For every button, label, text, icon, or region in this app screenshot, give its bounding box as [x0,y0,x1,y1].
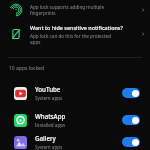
button[interactable]: Toggle app lock for YouTube [122,88,140,98]
button[interactable]: Gallery [0,133,150,150]
staticText: Gallery [35,134,56,142]
staticText: apps [30,39,41,45]
button[interactable]: YouTube [0,79,150,106]
staticText: System apps [35,95,63,101]
staticText: WhatsApp [35,112,66,120]
staticText: YouTube [35,85,61,93]
staticText: App lock can do this for the protected [30,33,111,39]
staticText: Installed apps [35,122,66,128]
staticText: Want to hide sensitive notifications? [30,24,123,31]
staticText: fingerprints [30,10,56,16]
button[interactable]: App lock supports adding multiple [0,0,150,19]
button[interactable]: WhatsApp [0,106,150,133]
staticText: System apps [35,144,63,150]
staticText: 10 apps locked [9,65,44,72]
button[interactable]: Toggle app lock for Gallery [122,137,140,147]
button[interactable]: Toggle app lock for WhatsApp [122,115,140,125]
button[interactable]: Want to hide sensitive notifications? [0,19,150,49]
staticText: App lock supports adding multiple [30,4,105,10]
